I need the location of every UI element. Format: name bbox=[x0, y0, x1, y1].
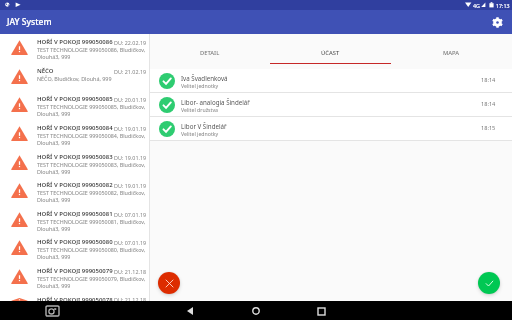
staticText: DU: 20.01.19 bbox=[114, 96, 147, 103]
staticText: TEST TECHNOLOGIE 999050085, Bludičkov, D… bbox=[37, 103, 147, 117]
staticText: DU: 21.12.18 bbox=[114, 268, 147, 275]
button[interactable]: Back bbox=[183, 303, 199, 319]
staticText: TEST TECHNOLOGIE 999050084, Bludičkov, D… bbox=[37, 132, 147, 146]
button[interactable]: HOŘÍ V POKOJI 999050078 bbox=[0, 292, 149, 301]
staticText: TEST TECHNOLOGIE 999050079, Bludičkov, D… bbox=[37, 275, 147, 289]
staticText: TEST TECHNOLOGIE 999050080, Bludičkov, D… bbox=[37, 246, 147, 260]
staticText: Libor V Šindelář bbox=[181, 122, 227, 130]
button[interactable]: MAPA bbox=[391, 34, 512, 64]
staticText: TEST TECHNOLOGIE 999050081, Bludičkov, D… bbox=[37, 218, 147, 232]
button[interactable]: Settings bbox=[488, 13, 506, 31]
staticText: 18:14 bbox=[481, 76, 496, 84]
staticText: DU: 07.01.19 bbox=[114, 239, 147, 246]
staticText: HOŘÍ V POKOJI 999050081 bbox=[37, 210, 113, 218]
staticText: HOŘÍ V POKOJI 999050085 bbox=[37, 95, 113, 103]
button[interactable]: HOŘÍ V POKOJI 999050084 bbox=[0, 120, 149, 149]
staticText: JAY System bbox=[7, 16, 52, 28]
staticText: HOŘÍ V POKOJI 999050080 bbox=[37, 238, 113, 246]
staticText: TEST TECHNOLOGIE 999050083, Bludičkov, D… bbox=[37, 161, 147, 175]
button[interactable]: HOŘÍ V POKOJI 999050085 bbox=[0, 91, 149, 120]
staticText: DU: 21.12.18 bbox=[114, 296, 147, 301]
button[interactable]: Screenshot bbox=[44, 302, 61, 319]
button[interactable]: HOŘÍ V POKOJI 999050080 bbox=[0, 234, 149, 263]
button[interactable]: Home bbox=[248, 303, 264, 319]
staticText: Iva Švadlenková bbox=[181, 74, 228, 82]
staticText: HOŘÍ V POKOJI 999050084 bbox=[37, 124, 113, 132]
staticText: HOŘÍ V POKOJI 999050082 bbox=[37, 181, 113, 189]
staticText: Velitel družstva bbox=[181, 106, 218, 113]
staticText: NĚČO bbox=[37, 67, 54, 75]
staticText: TEST TECHNOLOGIE 999050082, Bludičkov, D… bbox=[37, 189, 147, 203]
staticText: DU: 19.01.19 bbox=[114, 182, 147, 189]
button[interactable]: HOŘÍ V POKOJI 999050083 bbox=[0, 149, 149, 177]
button[interactable]: HOŘÍ V POKOJI 999050086 bbox=[0, 34, 149, 63]
button[interactable]: HOŘÍ V POKOJI 999050082 bbox=[0, 177, 149, 206]
staticText: HOŘÍ V POKOJI 999050078 bbox=[37, 296, 113, 301]
staticText: DU: 19.01.19 bbox=[114, 125, 147, 132]
staticText: Libor- analogia Šindelář bbox=[181, 98, 250, 106]
staticText: 18:15 bbox=[481, 124, 496, 132]
button[interactable]: Libor V Šindelář bbox=[150, 117, 512, 140]
staticText: Velitel jednotky bbox=[181, 82, 219, 89]
staticText: HOŘÍ V POKOJI 999050079 bbox=[37, 267, 113, 275]
button[interactable]: DETAIL bbox=[150, 34, 270, 64]
staticText: HOŘÍ V POKOJI 999050086 bbox=[37, 38, 113, 46]
staticText: DU: 07.01.19 bbox=[114, 211, 147, 218]
button[interactable]: ÚČAST bbox=[270, 34, 391, 64]
staticText: DU: 19.01.19 bbox=[114, 154, 147, 161]
staticText: 18:14 bbox=[481, 100, 496, 108]
staticText: DU: 22.02.19 bbox=[114, 39, 147, 46]
button[interactable]: Reject bbox=[158, 272, 180, 294]
staticText: DETAIL bbox=[200, 49, 220, 57]
button[interactable]: HOŘÍ V POKOJI 999050081 bbox=[0, 206, 149, 234]
staticText: 4G bbox=[473, 2, 480, 9]
staticText: 17:13 bbox=[496, 2, 510, 9]
staticText: NĚČO, Bludičkov, Dlouhá, 999 bbox=[37, 75, 112, 82]
button[interactable]: Recents bbox=[313, 303, 329, 319]
staticText: ÚČAST bbox=[321, 49, 340, 57]
staticText: HOŘÍ V POKOJI 999050083 bbox=[37, 153, 113, 161]
staticText: Velitel jednotky bbox=[181, 130, 219, 137]
button[interactable]: NĚČO bbox=[0, 63, 149, 91]
button[interactable]: HOŘÍ V POKOJI 999050079 bbox=[0, 263, 149, 292]
staticText: TEST TECHNOLOGIE 999050086, Bludičkov, D… bbox=[37, 46, 147, 60]
staticText: DU: 21.02.19 bbox=[114, 68, 147, 75]
staticText: MAPA bbox=[443, 49, 460, 57]
button[interactable]: Iva Švadlenková bbox=[150, 69, 512, 92]
button[interactable]: Accept bbox=[478, 272, 500, 294]
button[interactable]: Libor- analogia Šindelář bbox=[150, 93, 512, 116]
